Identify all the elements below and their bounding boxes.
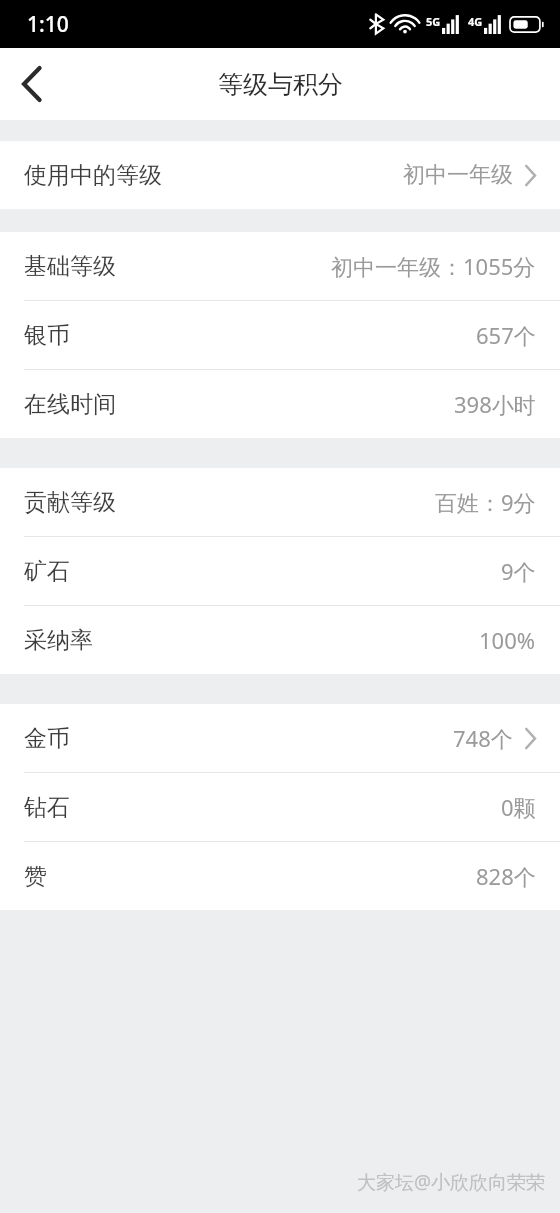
staticText: 金币 [24, 724, 70, 753]
staticText: 748个 [453, 723, 513, 753]
staticText: 赞 [24, 862, 47, 891]
button[interactable]: 使用中的等级 [0, 141, 560, 209]
staticText: 采纳率 [24, 626, 93, 655]
staticText: 0颗 [501, 792, 536, 822]
button[interactable]: 赞 [0, 842, 560, 910]
staticText: 大家坛@小欣欣向荣荣 [357, 1169, 546, 1195]
button[interactable]: 贡献等级 [0, 468, 560, 536]
button[interactable]: Back [0, 52, 64, 116]
staticText: 百姓：9分 [435, 487, 536, 517]
staticText: 矿石 [24, 557, 70, 586]
button[interactable]: 采纳率 [0, 606, 560, 674]
staticText: 9个 [501, 556, 536, 586]
staticText: 828个 [476, 861, 536, 891]
button[interactable]: 基础等级 [0, 232, 560, 300]
button[interactable]: 金币 [0, 704, 560, 772]
staticText: 1:10 [27, 10, 69, 39]
staticText: 初中一年级 [403, 161, 513, 189]
staticText: 398小时 [454, 389, 536, 419]
staticText: 使用中的等级 [24, 161, 162, 190]
button[interactable]: 银币 [0, 301, 560, 369]
staticText: 在线时间 [24, 390, 116, 419]
staticText: 钻石 [24, 793, 70, 822]
staticText: 基础等级 [24, 252, 116, 281]
button[interactable]: 矿石 [0, 537, 560, 605]
button[interactable]: 钻石 [0, 773, 560, 841]
staticText: 100% [479, 625, 536, 655]
staticText: 贡献等级 [24, 488, 116, 517]
button[interactable]: 在线时间 [0, 370, 560, 438]
staticText: 4G [468, 14, 483, 29]
staticText: 初中一年级：1055分 [331, 251, 536, 281]
staticText: 等级与积分 [218, 69, 343, 100]
staticText: 5G [426, 14, 441, 29]
staticText: 657个 [476, 320, 536, 350]
staticText: 银币 [24, 321, 70, 350]
